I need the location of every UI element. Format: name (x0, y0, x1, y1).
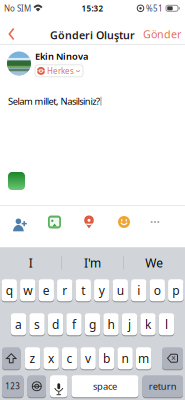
button[interactable]: Herkes (35, 65, 83, 77)
staticText: Herkes (47, 66, 74, 76)
button[interactable]: × (162, 347, 183, 370)
button[interactable]: j (122, 313, 137, 336)
button[interactable]: k (140, 313, 156, 336)
button[interactable]: c (62, 347, 77, 370)
staticText: l (165, 316, 168, 332)
staticText: a (15, 316, 22, 332)
staticText: c (67, 350, 73, 366)
button[interactable] (2, 347, 20, 370)
button[interactable] (140, 209, 170, 235)
staticText: n (122, 350, 129, 366)
staticText: i (137, 282, 140, 298)
staticText: q (6, 282, 13, 298)
staticText: Gönderi Oluştur (50, 28, 135, 42)
button[interactable]: l (159, 313, 174, 336)
staticText: m (138, 350, 149, 366)
staticText: h (107, 316, 114, 332)
staticText: s (34, 316, 40, 332)
button[interactable]: m (136, 347, 151, 370)
staticText: return (149, 380, 177, 392)
staticText: o (154, 282, 161, 298)
staticText: %51 (146, 3, 163, 14)
button[interactable]: 123 (2, 375, 23, 398)
button[interactable]: s (29, 313, 45, 336)
button[interactable]: y (94, 279, 109, 302)
button[interactable]: u (112, 279, 128, 302)
staticText: 15:32 (81, 3, 103, 14)
staticText: space (93, 380, 117, 392)
staticText: w (23, 282, 32, 298)
button[interactable]: d (48, 313, 63, 336)
staticText: Selam millet, Nasilsiniz? (8, 95, 100, 107)
button[interactable]: o (149, 279, 165, 302)
button[interactable]: I'm (62, 251, 123, 275)
staticText: z (30, 350, 36, 366)
staticText: k (145, 316, 151, 332)
button[interactable]: Gönder (142, 27, 182, 41)
button[interactable]: z (25, 347, 40, 370)
button[interactable]: space (71, 375, 138, 398)
button[interactable]: r (57, 279, 72, 302)
button[interactable] (50, 375, 67, 398)
button[interactable]: x (43, 347, 59, 370)
staticText: e (43, 282, 50, 298)
button[interactable]: return (142, 375, 183, 398)
staticText: r (62, 282, 67, 298)
staticText: j (128, 316, 131, 332)
staticText: y (99, 282, 105, 298)
button[interactable] (39, 209, 69, 235)
staticText: x (48, 350, 54, 366)
button[interactable]: a (11, 313, 26, 336)
button[interactable]: f (66, 313, 82, 336)
staticText: I (29, 255, 33, 271)
button[interactable] (27, 375, 46, 398)
staticText: × (171, 353, 176, 363)
staticText: Gönder (143, 27, 181, 41)
button[interactable] (3, 209, 33, 235)
button[interactable]: n (117, 347, 133, 370)
button[interactable]: h (103, 313, 119, 336)
button[interactable]: t (75, 279, 91, 302)
staticText: u (117, 282, 124, 298)
staticText: p (172, 282, 179, 298)
button[interactable]: b (99, 347, 114, 370)
staticText: b (103, 350, 110, 366)
staticText: v (85, 350, 91, 366)
button[interactable]: v (80, 347, 96, 370)
button[interactable] (109, 209, 139, 235)
staticText: 123 (5, 381, 20, 391)
staticText: No SIM (4, 3, 31, 14)
button[interactable]: q (1, 279, 17, 302)
button[interactable]: e (38, 279, 54, 302)
staticText: We (145, 255, 163, 271)
button[interactable] (74, 209, 104, 235)
staticText: d (52, 316, 59, 332)
staticText: I'm (84, 255, 101, 271)
button[interactable]: w (20, 279, 35, 302)
button[interactable]: g (85, 313, 100, 336)
button[interactable]: I (0, 251, 61, 275)
button[interactable]: p (168, 279, 183, 302)
staticText: f (72, 316, 76, 332)
button[interactable] (2, 26, 22, 42)
button[interactable]: We (124, 251, 185, 275)
staticText: Ekin Ninova (35, 50, 88, 62)
staticText: t (81, 282, 85, 298)
button[interactable]: i (131, 279, 146, 302)
staticText: g (89, 316, 96, 332)
